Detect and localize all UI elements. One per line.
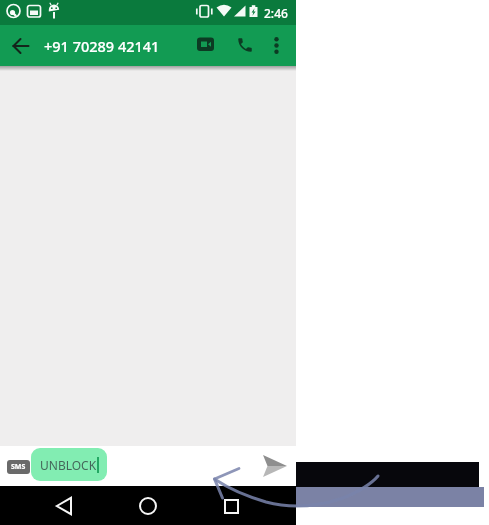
staticText: SMS [11,462,26,472]
button[interactable] [264,31,288,59]
button[interactable] [8,33,34,59]
button[interactable] [192,31,220,59]
staticText: +91 70289 42141 [44,36,160,56]
button[interactable]: SMS [7,460,30,474]
button[interactable] [136,496,160,516]
button[interactable]: UNBLOCK [31,448,107,481]
button[interactable] [52,496,76,516]
button[interactable] [259,454,291,481]
staticText: 2:46 [264,5,288,21]
button[interactable] [231,31,259,59]
button[interactable] [219,496,243,516]
staticText: UNBLOCK [40,457,97,473]
